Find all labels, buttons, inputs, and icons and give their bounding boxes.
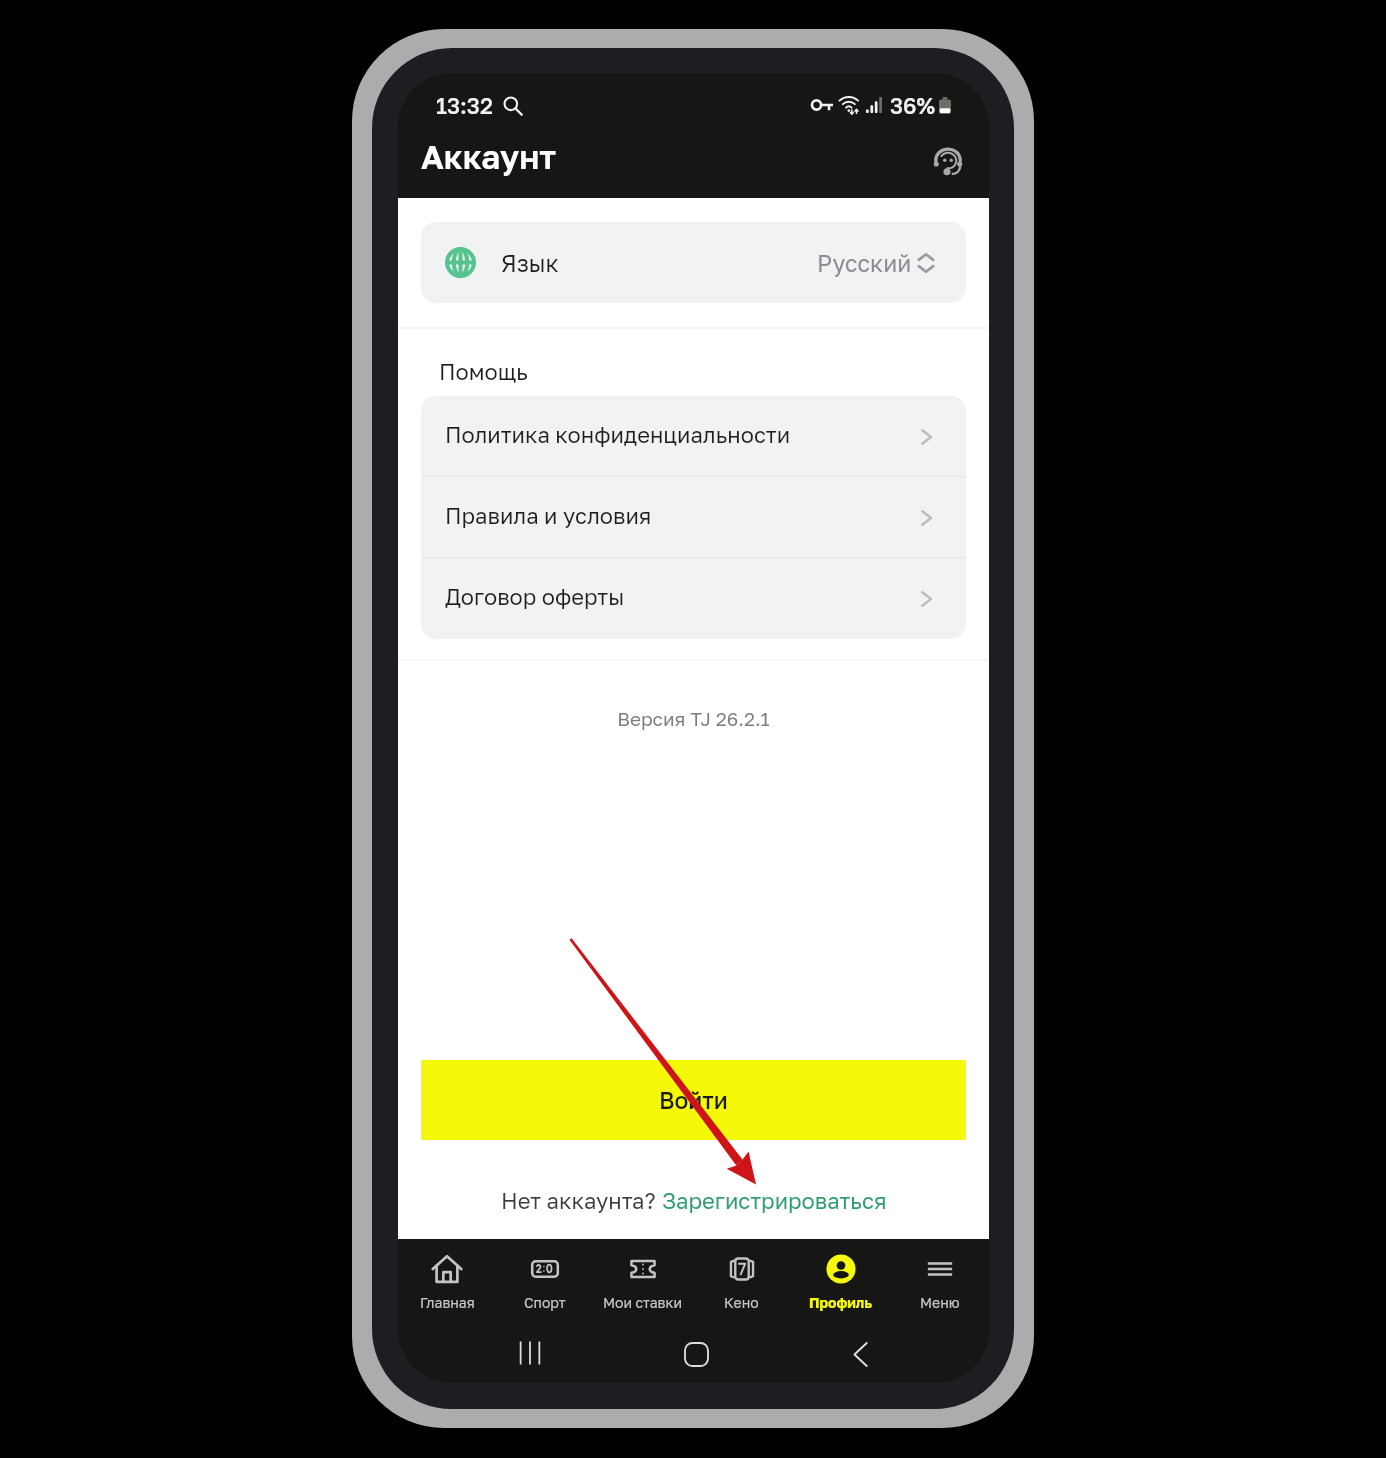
button[interactable]: Политика конфиденциальности: [421, 396, 966, 477]
staticText: 36%: [890, 92, 936, 118]
staticText: Помощь: [439, 358, 528, 384]
staticText: Профиль: [809, 1294, 872, 1311]
button[interactable]: Меню: [890, 1239, 989, 1319]
button[interactable]: Back: [837, 1330, 885, 1378]
staticText: Мои ставки: [603, 1294, 683, 1311]
staticText: Спорт: [524, 1294, 566, 1311]
button[interactable]: Support chat: [925, 138, 971, 184]
button[interactable]: Главная: [398, 1239, 496, 1319]
staticText: Правила и условия: [445, 502, 652, 528]
button[interactable]: Recent apps: [506, 1329, 554, 1377]
staticText: Аккаунт: [421, 137, 557, 177]
staticText: Политика конфиденциальности: [445, 421, 791, 447]
staticText: Зарегистрироваться: [662, 1187, 887, 1213]
button[interactable]: Правила и условия: [421, 477, 966, 558]
button[interactable]: Войти: [421, 1060, 966, 1140]
button[interactable]: Мои ставки: [594, 1239, 692, 1319]
staticText: Договор оферты: [445, 583, 625, 609]
staticText: Главная: [420, 1294, 475, 1311]
staticText: Кено: [724, 1294, 759, 1311]
staticText: Язык: [501, 249, 559, 277]
button[interactable]: Договор оферты: [421, 558, 966, 639]
button[interactable]: Язык: [421, 222, 966, 303]
button[interactable]: Кено: [692, 1239, 791, 1319]
staticText: Войти: [659, 1086, 728, 1114]
staticText: Русский: [817, 249, 912, 277]
button[interactable]: Спорт: [496, 1239, 594, 1319]
button[interactable]: Профиль: [791, 1239, 890, 1319]
staticText: 13:32: [436, 92, 493, 118]
button[interactable]: Home: [672, 1330, 720, 1378]
staticText: Меню: [920, 1294, 960, 1311]
staticText: Версия TJ 26.2.1: [398, 707, 989, 730]
button[interactable]: Нет аккаунта?: [398, 1187, 989, 1213]
staticText: Нет аккаунта?: [501, 1187, 662, 1213]
